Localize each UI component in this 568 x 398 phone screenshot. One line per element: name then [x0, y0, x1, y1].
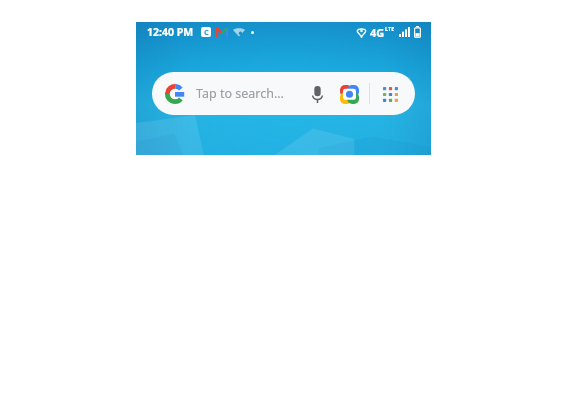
button[interactable]: Voice search — [304, 81, 330, 107]
staticText: Tap to search... — [196, 85, 284, 102]
staticText: 12:40 PM — [147, 25, 194, 39]
button[interactable]: Google Lens — [336, 81, 362, 107]
staticText: 4G — [370, 25, 385, 40]
staticText: C — [204, 27, 209, 37]
button[interactable]: Tap to search... — [152, 72, 415, 115]
staticText: LTE — [385, 25, 395, 32]
button[interactable]: All apps — [377, 81, 403, 107]
